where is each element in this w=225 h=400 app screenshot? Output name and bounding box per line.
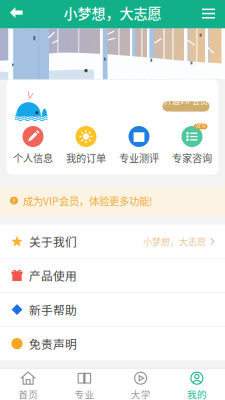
staticText: 产品使用 (29, 267, 77, 284)
button[interactable]: 专业测评 (112, 126, 165, 165)
button[interactable]: 首页 (0, 369, 56, 400)
staticText: 小梦想，大志愿 (143, 235, 206, 248)
staticText: 免责声明 (29, 335, 77, 352)
button[interactable]: 个人信息 (6, 126, 59, 165)
staticText: 新手帮助 (29, 301, 77, 318)
staticText: 专业测评 (119, 150, 159, 165)
staticText: 小梦想，大志愿 (63, 2, 161, 23)
staticText: 成为VIP会员，体验更多功能! (23, 193, 152, 208)
staticText: 个人信息 (13, 150, 53, 165)
button[interactable]: Menu (189, 0, 225, 29)
button[interactable]: 我的 (169, 369, 225, 400)
staticText: 开通VIP会员>> (164, 95, 208, 118)
button[interactable]: NEW (165, 126, 218, 165)
button[interactable]: 专业 (56, 369, 112, 400)
button[interactable]: 免责声明 (0, 327, 225, 360)
button[interactable]: 产品使用 (0, 259, 225, 292)
staticText: 我的订单 (66, 150, 106, 165)
button[interactable]: 新手帮助 (0, 293, 225, 326)
staticText: 专业 (74, 387, 94, 400)
button[interactable]: 大学 (112, 369, 169, 400)
staticText: 我的 (187, 387, 207, 400)
button[interactable]: 我的订单 (59, 126, 112, 165)
staticText: 关于我们 (29, 233, 77, 250)
button[interactable]: 成为VIP会员，体验更多功能! (0, 186, 225, 216)
button[interactable]: 关于我们 (0, 225, 225, 258)
staticText: NEW (196, 124, 206, 129)
staticText: 首页 (18, 387, 38, 400)
button[interactable]: Back (0, 0, 36, 29)
button[interactable]: 开通VIP会员>> (162, 101, 209, 112)
staticText: 大学 (131, 387, 151, 400)
staticText: 专家咨询 (172, 150, 212, 165)
